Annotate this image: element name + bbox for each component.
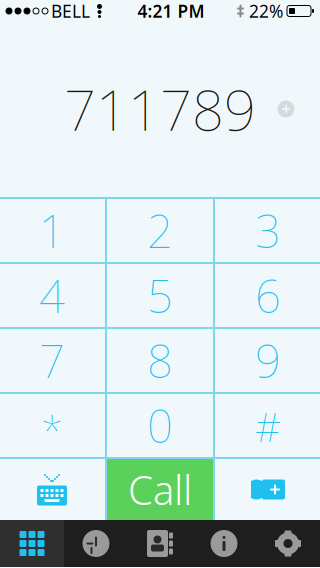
staticText: 9	[255, 330, 281, 391]
staticText: 1	[39, 200, 65, 261]
button[interactable]: #	[215, 394, 320, 457]
button[interactable]: 9	[215, 329, 320, 392]
button[interactable]: Clear	[264, 87, 308, 131]
staticText: 3	[255, 200, 281, 261]
button[interactable]: Hide keyboard	[0, 459, 105, 520]
staticText: 4	[39, 265, 65, 326]
staticText: 2	[147, 200, 173, 261]
button[interactable]: Recents	[64, 520, 128, 567]
staticText: 5	[147, 265, 173, 326]
button[interactable]: 6	[215, 264, 320, 327]
button[interactable]: 7	[0, 329, 105, 392]
button[interactable]: 2	[107, 199, 213, 262]
button[interactable]: 8	[107, 329, 213, 392]
button[interactable]: Settings	[256, 520, 320, 567]
button[interactable]: *	[0, 394, 105, 457]
button[interactable]: 4	[0, 264, 105, 327]
button[interactable]: Call	[107, 459, 213, 520]
staticText: 22%	[249, 0, 283, 22]
staticText: 6	[255, 265, 281, 326]
button[interactable]: Info	[192, 520, 256, 567]
staticText: 711789	[64, 72, 256, 146]
button[interactable]: Keypad	[0, 520, 64, 567]
staticText: Call	[128, 463, 192, 516]
staticText: 8	[147, 330, 173, 391]
button[interactable]: 3	[215, 199, 320, 262]
button[interactable]: 0	[107, 394, 213, 457]
staticText: *	[41, 404, 63, 457]
staticText: 4:21 PM	[137, 0, 204, 22]
staticText: BELL	[51, 0, 90, 22]
staticText: #	[255, 400, 281, 453]
button[interactable]: 5	[107, 264, 213, 327]
staticText: 7	[39, 330, 65, 391]
button[interactable]: Contacts	[128, 520, 192, 567]
button[interactable]: 1	[0, 199, 105, 262]
staticText: 0	[147, 395, 173, 456]
button[interactable]: Delete	[215, 459, 320, 520]
